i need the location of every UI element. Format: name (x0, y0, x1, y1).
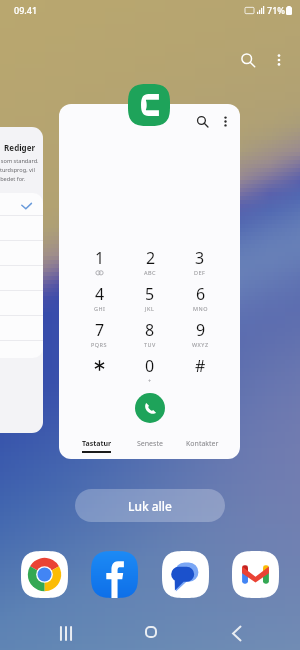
staticText: 2 (146, 247, 156, 269)
button[interactable]: Facebook (91, 551, 138, 598)
button[interactable]: More options (264, 45, 294, 75)
button[interactable]: Search (59, 104, 240, 459)
button[interactable]: More options (214, 110, 236, 132)
staticText: Seneste (137, 439, 163, 449)
button[interactable]: 3 (175, 247, 225, 283)
button[interactable]: 1 (74, 247, 125, 283)
staticText: 71% (267, 4, 285, 16)
button[interactable]: 8 (125, 319, 175, 355)
staticText: GHI (94, 305, 106, 312)
staticText: JKL (145, 305, 155, 312)
staticText: # (195, 355, 206, 377)
staticText: PQRS (91, 341, 108, 348)
staticText: MNO (193, 305, 208, 312)
button[interactable]: 2 (125, 247, 175, 283)
staticText: 8 (145, 319, 155, 341)
button[interactable] (74, 355, 125, 391)
staticText: 6 (196, 283, 206, 305)
button[interactable]: 0 (125, 355, 175, 391)
button[interactable]: Chrome (21, 551, 68, 598)
staticText: 4 (95, 283, 105, 305)
staticText: 9 (196, 319, 206, 341)
button[interactable]: 6 (175, 283, 225, 319)
staticText: 1 (95, 247, 105, 269)
staticText: du blive bedet for. (0, 175, 26, 183)
button[interactable]: Home (133, 614, 169, 650)
staticText: Vaelg hvad der vises som standard. (0, 157, 39, 165)
button[interactable]: 9 (175, 319, 225, 355)
button[interactable]: Call (135, 393, 165, 423)
staticText: 3 (195, 247, 205, 269)
staticText: 0 (145, 355, 155, 377)
staticText: WXYZ (192, 341, 209, 348)
button[interactable]: Gmail (232, 551, 279, 598)
staticText: Hvis du skifter tastaturdsprog, vil (0, 166, 35, 174)
button[interactable]: Search (232, 44, 264, 76)
button[interactable]: Recents (48, 615, 84, 650)
staticText: Tastatur (82, 439, 112, 449)
staticText: 7 (95, 319, 105, 341)
staticText: ABC (144, 269, 157, 276)
button[interactable]: 7 (74, 319, 125, 355)
button[interactable]: Seneste (123, 437, 176, 449)
button[interactable]: Tastatur (70, 437, 123, 453)
staticText: 09.41 (14, 4, 38, 16)
button[interactable]: 5 (125, 283, 175, 319)
button[interactable]: 4 (74, 283, 125, 319)
button[interactable]: Search (190, 109, 214, 133)
button[interactable]: Kontakter (176, 437, 229, 449)
staticText: Kontakter (186, 439, 219, 449)
button[interactable]: Phone app (128, 84, 170, 126)
staticText: Rediger (0, 142, 35, 153)
button[interactable]: Back (218, 615, 254, 650)
staticText: 5 (145, 283, 155, 305)
staticText: + (148, 377, 152, 384)
staticText: TUV (144, 341, 156, 348)
button[interactable]: Rediger (0, 127, 43, 433)
button[interactable]: # (175, 355, 225, 391)
staticText: Luk alle (128, 498, 172, 514)
button[interactable]: Luk alle (75, 489, 225, 522)
staticText: DEF (194, 269, 206, 276)
button[interactable]: Messages (162, 551, 209, 598)
